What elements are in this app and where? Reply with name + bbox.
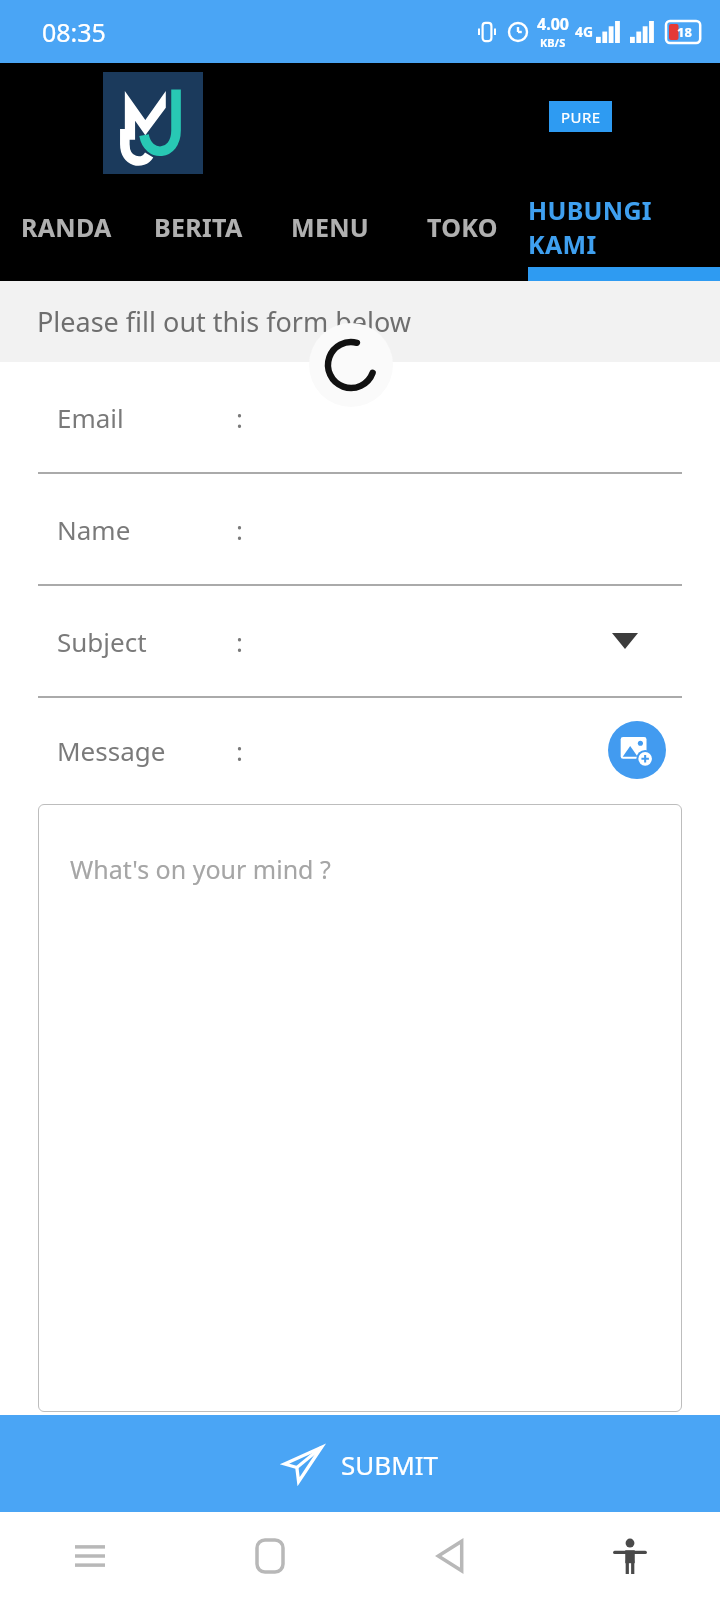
staticText: SUBMIT xyxy=(341,1447,439,1482)
staticText: Email xyxy=(57,400,124,435)
staticText: 4.00 xyxy=(537,13,569,35)
button[interactable]: Menu xyxy=(0,1512,180,1600)
staticText: 18 xyxy=(677,23,692,41)
staticText: : xyxy=(236,624,243,659)
staticText: BERITA xyxy=(154,210,243,244)
button[interactable]: Name xyxy=(0,474,720,584)
button[interactable]: BERITA xyxy=(132,189,264,281)
staticText: Name xyxy=(57,512,131,547)
staticText: : xyxy=(236,400,243,435)
button[interactable]: Subject xyxy=(0,586,720,696)
staticText: MENU xyxy=(291,210,370,244)
staticText: RANDA xyxy=(21,210,112,244)
staticText: Message xyxy=(57,733,166,768)
button[interactable]: SUBMIT xyxy=(0,1415,720,1512)
button[interactable]: MENU xyxy=(264,189,396,281)
button[interactable]: Home xyxy=(180,1512,360,1600)
button[interactable]: PURE xyxy=(549,101,612,132)
button[interactable]: Logo xyxy=(103,72,203,174)
button[interactable]: Back xyxy=(360,1512,540,1600)
button[interactable]: Add image xyxy=(608,721,666,779)
staticText: TOKO xyxy=(427,210,498,244)
staticText: Subject xyxy=(57,624,147,659)
button[interactable]: Accessibility xyxy=(540,1512,720,1600)
button[interactable]: What's on your mind ? xyxy=(38,804,682,1412)
button[interactable]: TOKO xyxy=(396,189,528,281)
button[interactable]: RANDA xyxy=(0,189,132,281)
staticText: What's on your mind ? xyxy=(70,852,331,886)
button[interactable]: Message xyxy=(0,698,720,802)
staticText: PURE xyxy=(561,107,601,127)
staticText: 08:35 xyxy=(42,15,106,49)
button[interactable]: Email xyxy=(0,362,720,472)
staticText: : xyxy=(236,733,243,768)
staticText: Please fill out this form below xyxy=(37,303,412,340)
staticText: HUBUNGI KAMI xyxy=(528,193,720,261)
staticText: KB/S xyxy=(540,35,566,50)
button[interactable]: HUBUNGI KAMI xyxy=(528,189,720,281)
staticText: 4G xyxy=(575,22,594,41)
staticText: : xyxy=(236,512,243,547)
